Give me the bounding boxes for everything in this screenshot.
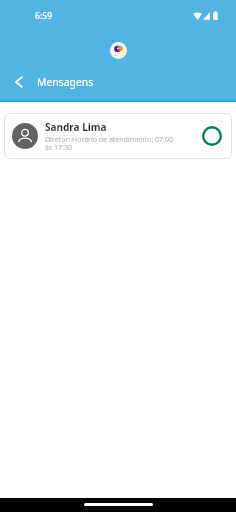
button[interactable]: Voltar (0, 68, 37, 96)
staticText: 6:59 (35, 10, 53, 22)
staticText: Diretor: Horário de atendimento: 07:00 à… (45, 135, 179, 152)
button[interactable]: Sandra Lima (4, 113, 232, 159)
staticText: Mensagens (37, 75, 94, 89)
staticText: Sandra Lima (45, 120, 107, 134)
